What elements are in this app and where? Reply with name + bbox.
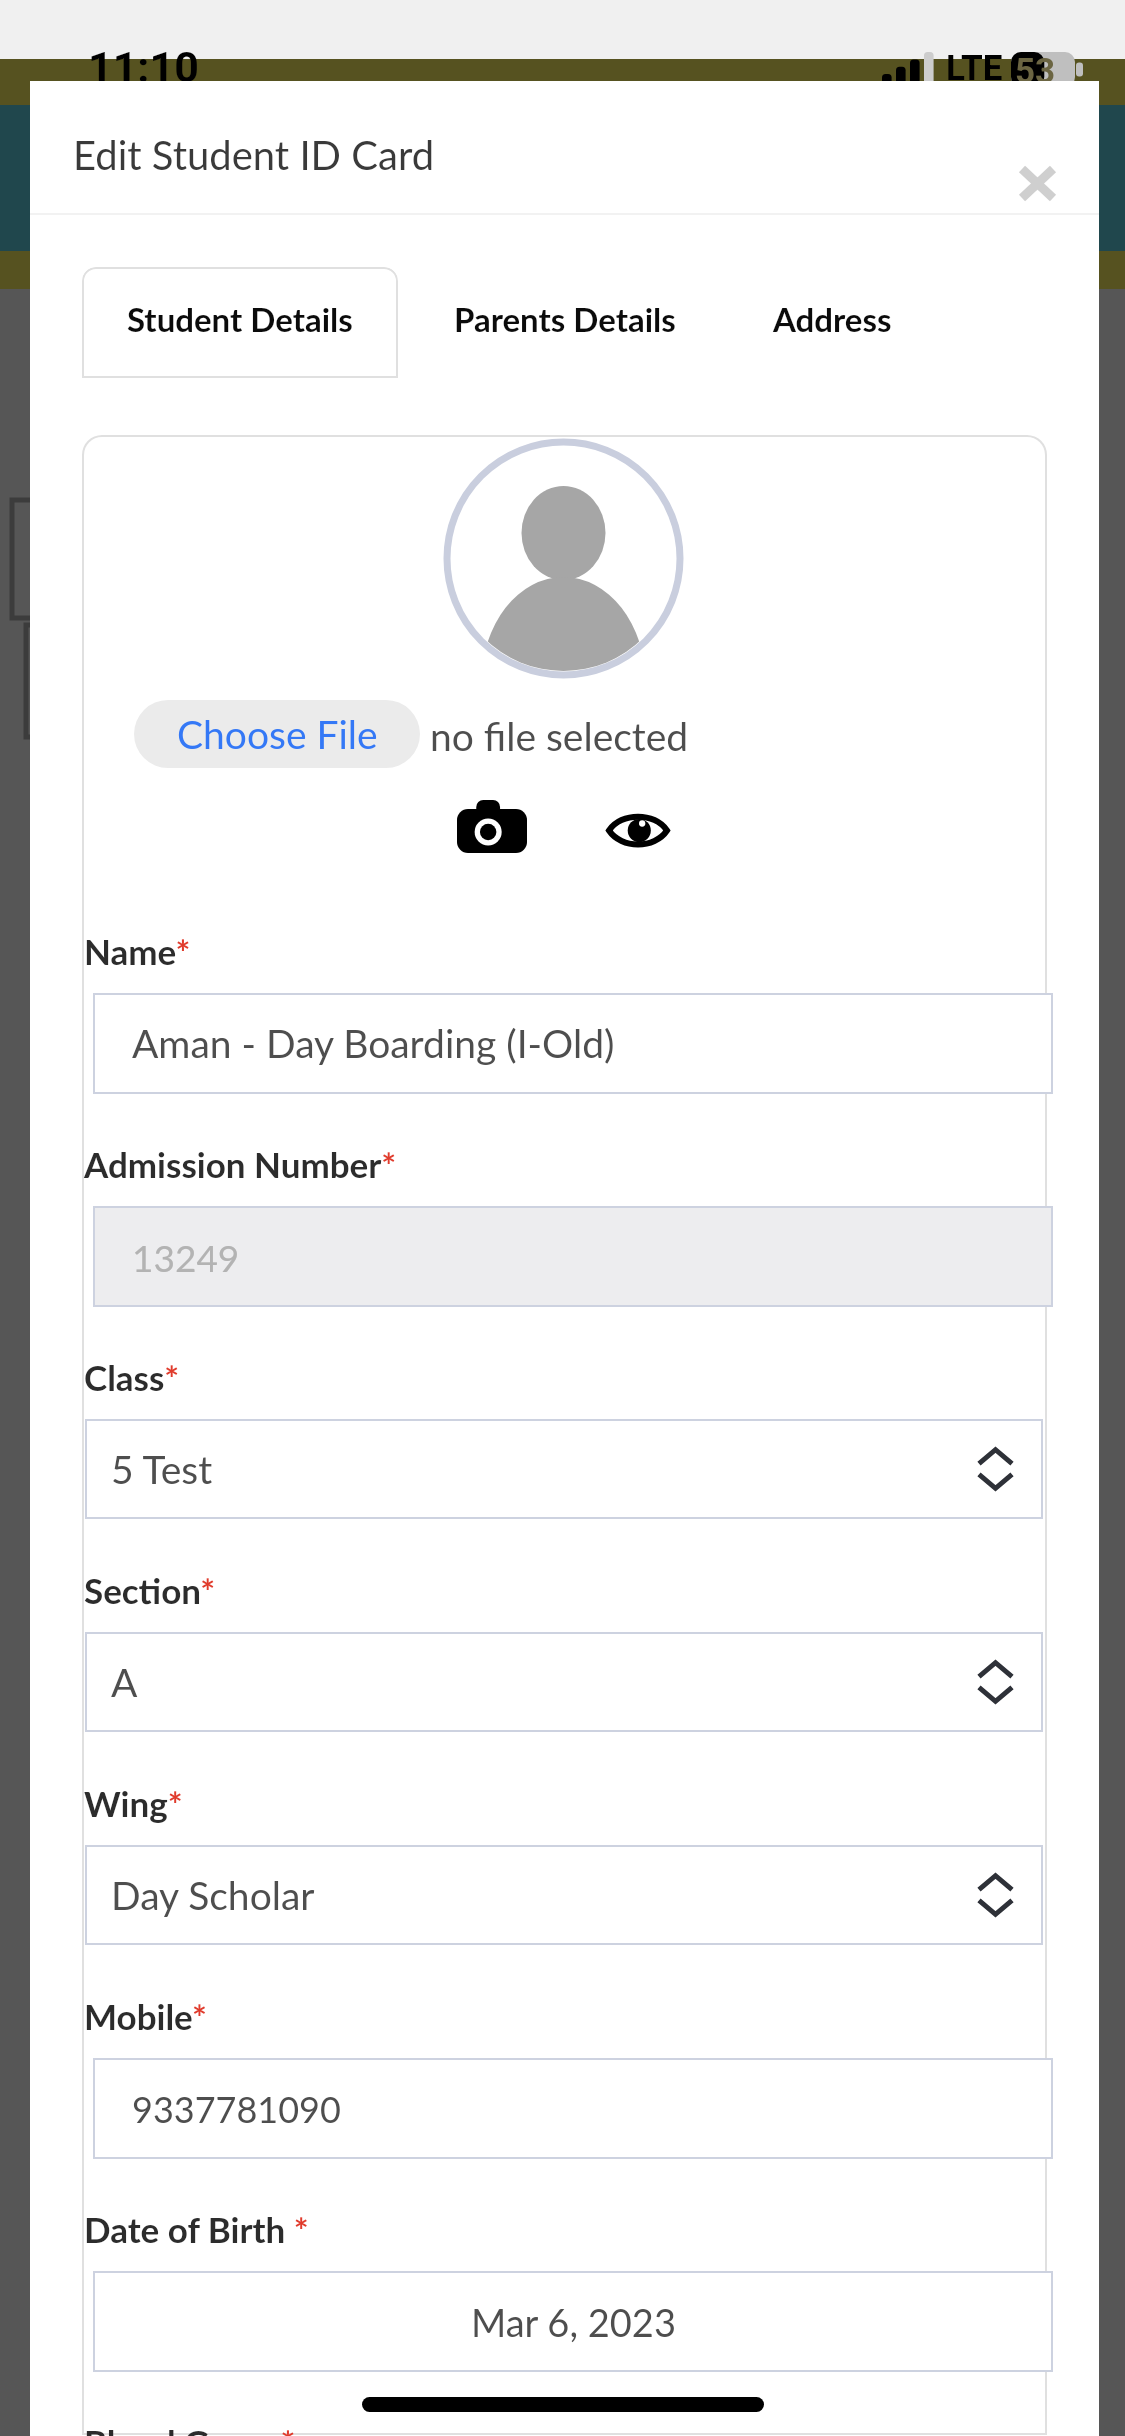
staticText: Class*	[84, 1356, 180, 1398]
button[interactable]: Aman - Day Boarding (I-Old)	[93, 993, 1053, 1094]
staticText: no file selected	[430, 713, 689, 760]
staticText: Date of Birth *	[84, 2208, 309, 2250]
staticText: Mobile*	[84, 1995, 207, 2037]
staticText: 9337781090	[132, 2087, 341, 2130]
button[interactable]: Close	[1007, 153, 1067, 213]
staticText: Edit Student ID Card	[73, 131, 435, 179]
staticText: Admission Number*	[84, 1143, 397, 1185]
button[interactable]: 5 Test	[85, 1419, 1043, 1519]
staticText: Wing*	[84, 1782, 183, 1824]
staticText: Section*	[84, 1569, 216, 1611]
button[interactable]: Take photo	[457, 800, 527, 853]
button[interactable]: Mar 6, 2023	[93, 2271, 1053, 2372]
button[interactable]: Address	[746, 267, 919, 378]
button[interactable]: Student Details	[82, 267, 398, 378]
staticText: LTE	[946, 48, 1003, 89]
staticText: Name*	[84, 930, 191, 972]
button[interactable]: 13249	[93, 1206, 1053, 1307]
staticText: Blood Group*	[84, 2421, 296, 2436]
staticText: 13249	[132, 1235, 240, 1279]
button[interactable]: Choose File	[134, 700, 420, 768]
staticText: Aman - Day Boarding (I-Old)	[132, 1020, 615, 1067]
staticText: 5 Test	[111, 1446, 213, 1493]
button[interactable]: A	[85, 1632, 1043, 1732]
staticText: Address	[773, 299, 892, 339]
button[interactable]: Parents Details	[427, 267, 702, 378]
staticText: 11:10	[88, 42, 199, 92]
button[interactable]: Day Scholar	[85, 1845, 1043, 1945]
staticText: Mar 6, 2023	[471, 2299, 676, 2345]
staticText: 53	[1015, 51, 1056, 86]
staticText: Parents Details	[454, 299, 676, 339]
button[interactable]: 9337781090	[93, 2058, 1053, 2159]
staticText: Day Scholar	[111, 1872, 315, 1919]
button[interactable]: Preview	[606, 813, 670, 848]
staticText: Choose File	[177, 711, 378, 758]
staticText: A	[111, 1659, 138, 1706]
staticText: Student Details	[127, 299, 353, 339]
